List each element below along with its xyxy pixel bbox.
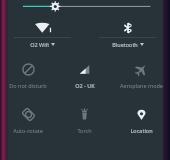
button[interactable]: O2 - UK [56,56,113,101]
staticText: Torch [77,127,92,134]
staticText: Auto-rotate [13,127,43,134]
button[interactable]: Aeroplane mode [113,56,170,101]
button[interactable]: Location [113,101,170,146]
staticText: O2 - UK [75,82,95,89]
button[interactable]: Bluetooth [85,21,170,48]
button[interactable]: Brightness [0,2,170,13]
staticText: Aeroplane mode [120,82,163,89]
staticText: Bluetooth [112,41,138,48]
staticText: Location [130,127,153,134]
staticText: Do not disturb [9,82,47,89]
button[interactable]: Wi-Fi [0,21,85,48]
staticText: O2 Wifi [30,41,49,48]
button[interactable]: Torch [56,101,113,146]
button[interactable]: Do not disturb [0,56,56,101]
button[interactable]: Auto-rotate [0,101,56,146]
